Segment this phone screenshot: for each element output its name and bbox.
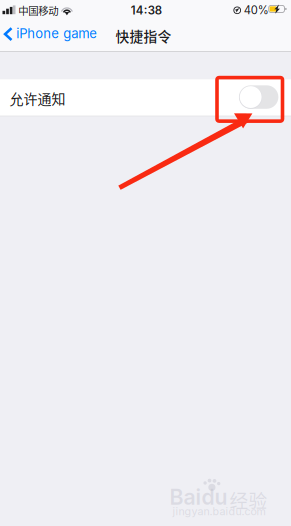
staticText: 允许通知 — [9, 88, 65, 108]
staticText: 经验 — [229, 486, 267, 513]
staticText: 40% — [244, 3, 269, 17]
staticText: 快捷指令 — [116, 26, 172, 46]
staticText: jingyan.baidu.com — [172, 505, 265, 518]
staticText: 14:38 — [131, 3, 162, 17]
staticText: Baidu — [169, 484, 227, 510]
staticText: 中国移动 — [18, 3, 58, 18]
staticText: iPhone game — [16, 26, 97, 41]
button[interactable]: iPhone game — [0, 22, 102, 46]
button[interactable]: 允许通知 — [0, 79, 291, 116]
